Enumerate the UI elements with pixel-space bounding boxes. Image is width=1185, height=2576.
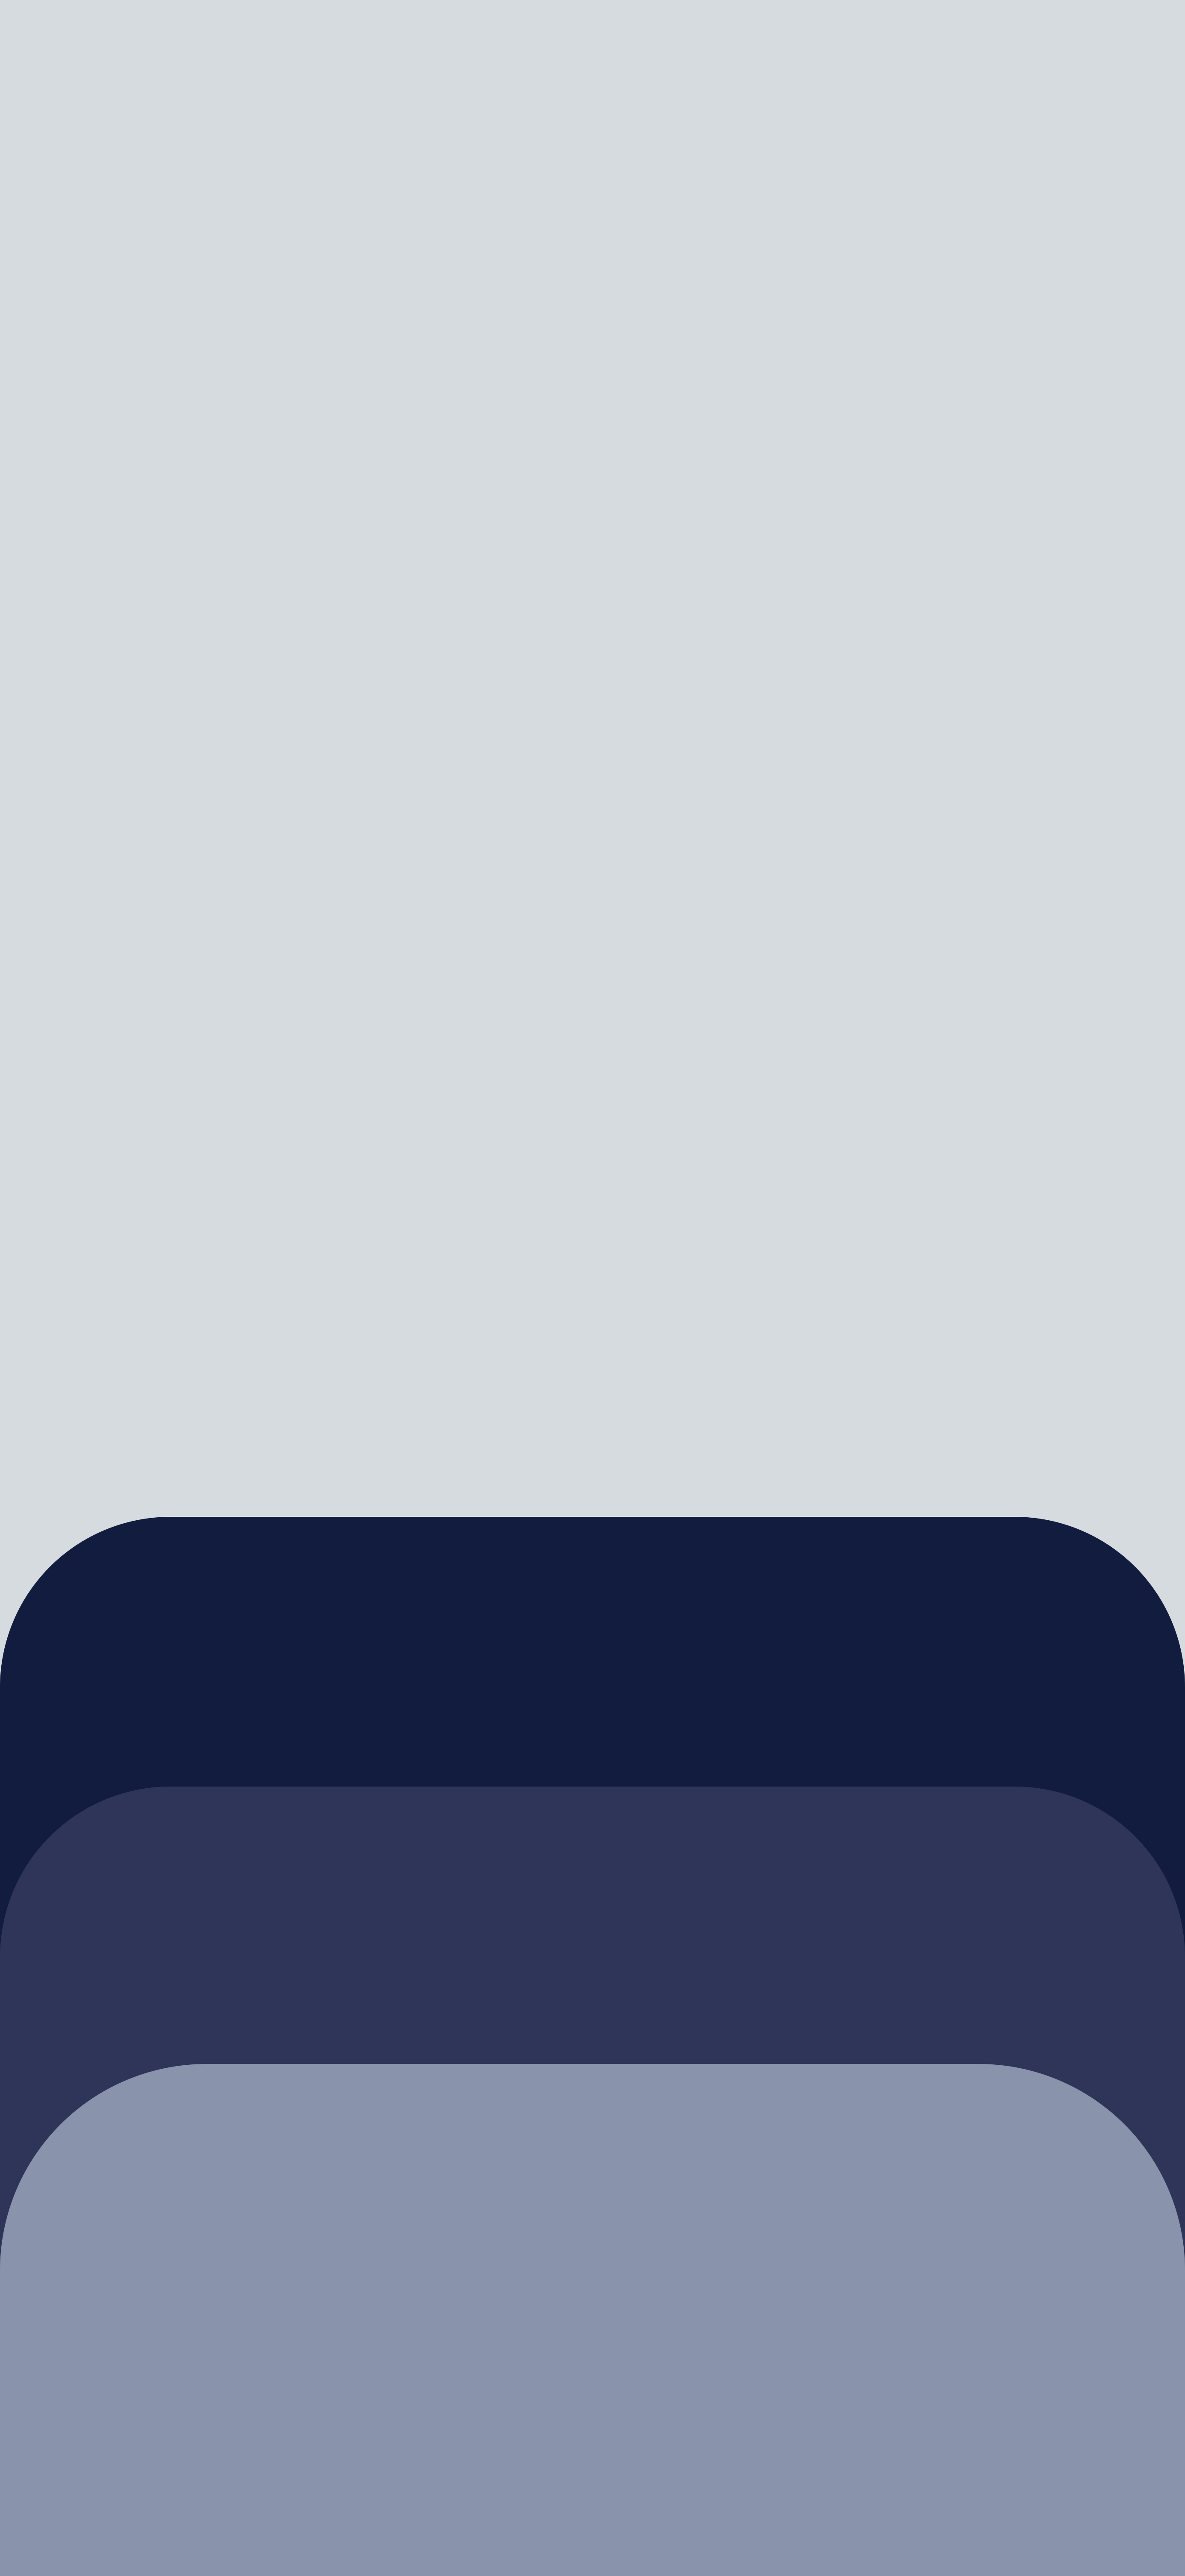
button[interactable]: Front card (0, 0, 1185, 2576)
button[interactable]: Middle card (0, 0, 1185, 2576)
button[interactable]: Back card (0, 0, 1185, 2576)
